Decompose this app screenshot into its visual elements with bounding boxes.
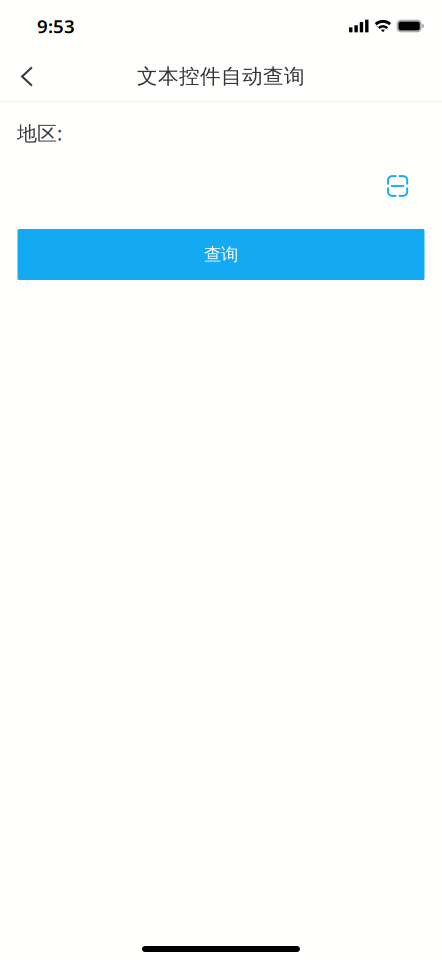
staticText: 文本控件自动查询: [137, 64, 305, 89]
staticText: 查询: [204, 244, 238, 265]
button[interactable]: Scan code: [377, 165, 419, 207]
staticText: 地区:: [17, 119, 62, 147]
staticText: 9:53: [37, 14, 75, 38]
button[interactable]: Back: [5, 54, 49, 98]
button[interactable]: 查询: [17, 229, 424, 280]
